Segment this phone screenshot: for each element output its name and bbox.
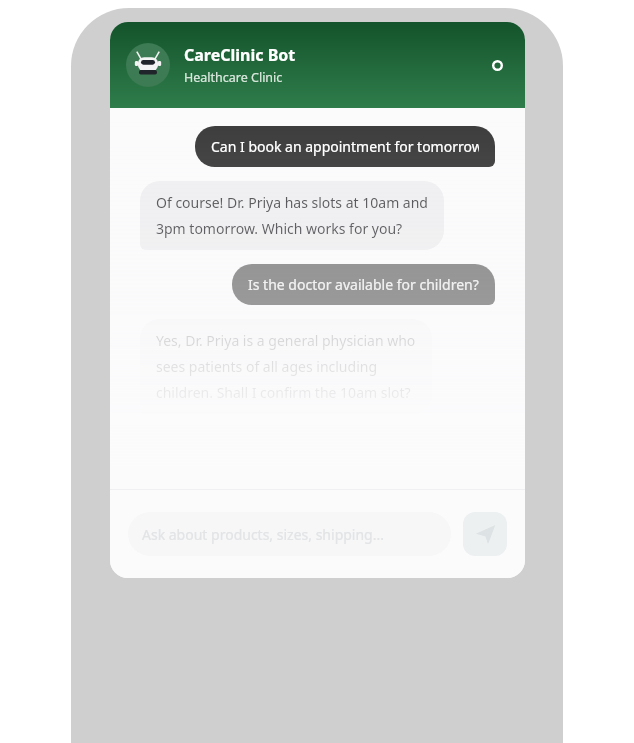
button[interactable]: Ask about products, sizes, shipping... (128, 512, 451, 556)
staticText: sees patients of all ages including (156, 357, 378, 376)
button[interactable]: Yes, Dr. Priya is a general physician wh… (140, 319, 432, 414)
staticText: Can I book an appointment for tomorrow? (211, 137, 479, 156)
button[interactable]: Online status (485, 53, 509, 77)
other: CareClinic Bot avatar (126, 43, 170, 87)
button[interactable]: Of course! Dr. Priya has slots at 10am a… (140, 181, 444, 250)
staticText: Of course! Dr. Priya has slots at 10am a… (156, 193, 428, 212)
staticText: Ask about products, sizes, shipping... (142, 525, 384, 544)
staticText: CareClinic Bot (184, 44, 296, 66)
staticText: Healthcare Clinic (184, 69, 283, 86)
staticText: Yes, Dr. Priya is a general physician wh… (156, 331, 416, 350)
button[interactable]: Is the doctor available for children? (232, 264, 495, 305)
staticText: Is the doctor available for children? (248, 275, 479, 294)
staticText: 3pm tomorrow. Which works for you? (156, 219, 403, 238)
button[interactable]: Can I book an appointment for tomorrow? (195, 126, 495, 167)
staticText: children. Shall I confirm the 10am slot? (156, 383, 411, 402)
button[interactable]: CareClinic Bot avatar (110, 22, 525, 108)
button[interactable]: Send message (463, 512, 507, 556)
